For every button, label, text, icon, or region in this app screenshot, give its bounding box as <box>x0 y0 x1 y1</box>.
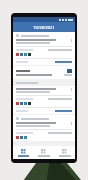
button[interactable] <box>13 115 75 141</box>
staticText: 10/28/2021 <box>33 25 55 30</box>
button[interactable]: More <box>54 146 75 159</box>
button[interactable]: Status badge <box>13 66 75 79</box>
button[interactable]: Reports <box>33 146 54 159</box>
other: Status badge <box>67 69 72 73</box>
button[interactable]: Home <box>13 146 33 159</box>
button[interactable] <box>13 86 75 114</box>
button[interactable]: 10/28/2021 <box>13 22 75 32</box>
button[interactable] <box>13 32 75 65</box>
